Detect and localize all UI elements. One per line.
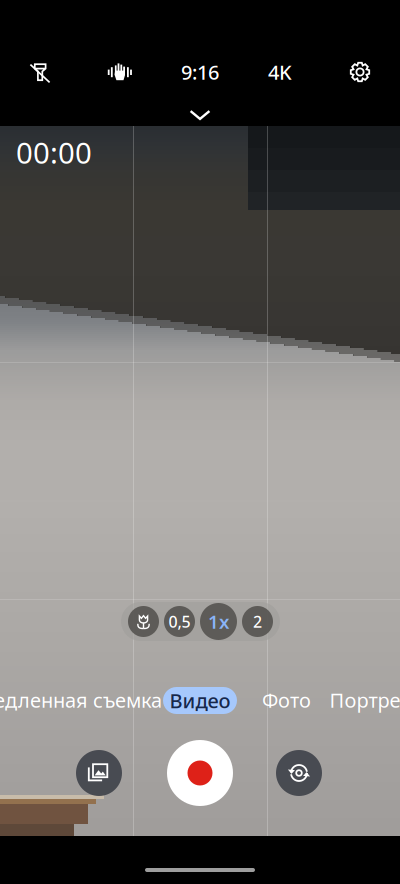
staticText: Замедленная съемка — [0, 687, 162, 713]
button[interactable]: Show more controls — [172, 105, 228, 125]
staticText: 4K — [268, 59, 292, 85]
button[interactable]: Портрет — [329, 686, 400, 714]
button[interactable]: Macro mode — [128, 606, 159, 637]
button[interactable]: Video stabilisation — [80, 44, 160, 100]
staticText: Видео — [169, 687, 230, 714]
button[interactable]: 1x — [200, 603, 237, 640]
staticText: 1x — [208, 609, 229, 634]
button[interactable]: 2 — [242, 606, 273, 637]
button[interactable]: Замедленная съемка — [0, 686, 162, 714]
staticText: Портрет — [329, 687, 400, 713]
button[interactable]: Фото — [262, 686, 311, 714]
staticText: 0,5 — [168, 611, 190, 632]
button[interactable]: 0,5 — [164, 606, 195, 637]
button[interactable]: Видео — [163, 687, 237, 714]
button[interactable]: 9:16 — [160, 44, 240, 100]
button[interactable]: Start recording — [167, 740, 233, 806]
staticText: Фото — [262, 687, 311, 713]
button[interactable]: Settings — [320, 44, 400, 100]
button[interactable]: Flash off — [0, 44, 80, 100]
staticText: 00:00 — [16, 133, 92, 172]
staticText: 9:16 — [181, 59, 219, 85]
button[interactable]: Switch camera — [276, 750, 322, 796]
button[interactable]: Open gallery — [76, 750, 122, 796]
staticText: 2 — [253, 611, 262, 632]
button[interactable]: 4K — [240, 44, 320, 100]
